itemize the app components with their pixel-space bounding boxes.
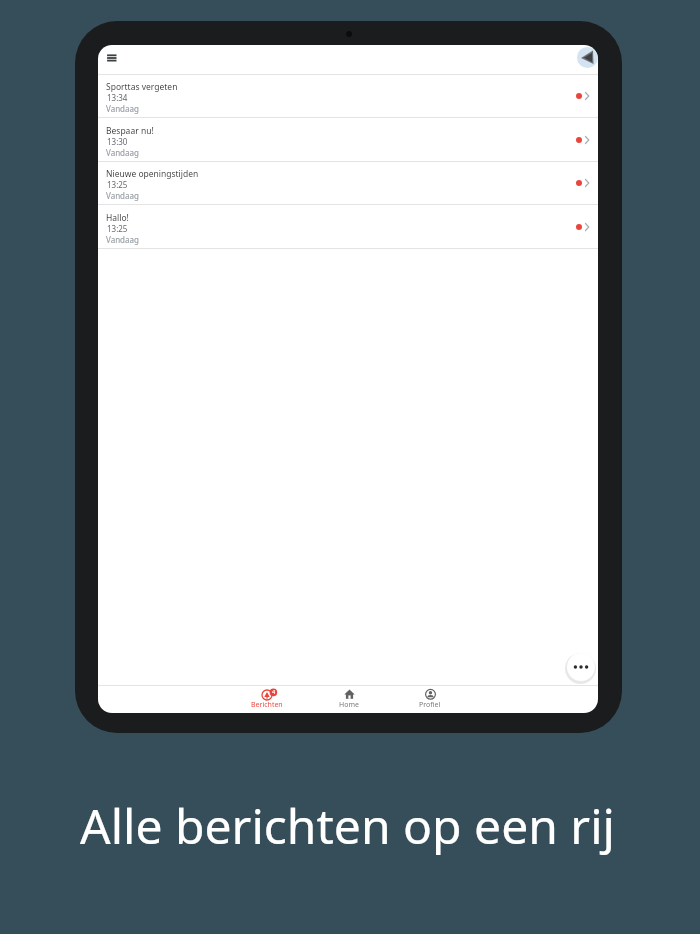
button[interactable]: Hallo! <box>98 205 598 249</box>
staticText: Vandaag <box>106 147 139 158</box>
staticText: 4 <box>272 688 276 695</box>
button[interactable] <box>102 49 122 67</box>
button[interactable]: Sporttas vergeten <box>98 74 598 118</box>
button[interactable] <box>567 653 595 681</box>
staticText: Vandaag <box>106 103 139 114</box>
button[interactable]: Bespaar nu! <box>98 118 598 162</box>
button[interactable]: 4 <box>237 686 297 712</box>
staticText: Home <box>339 700 359 710</box>
staticText: Bespaar nu! <box>106 125 154 137</box>
button[interactable]: Nieuwe openingstijden <box>98 161 598 205</box>
staticText: Berichten <box>251 700 283 710</box>
staticText: 13:34 <box>107 92 128 103</box>
staticText: Profiel <box>419 700 441 710</box>
staticText: Sporttas vergeten <box>106 81 178 93</box>
button[interactable]: Profiel <box>400 686 460 712</box>
staticText: Hallo! <box>106 212 129 224</box>
staticText: Vandaag <box>106 190 139 201</box>
staticText: 13:30 <box>107 136 128 147</box>
staticText: Alle berichten op een rij <box>80 793 615 858</box>
button[interactable]: Home <box>319 686 379 712</box>
button[interactable] <box>577 47 598 68</box>
staticText: Nieuwe openingstijden <box>106 168 199 180</box>
staticText: Vandaag <box>106 234 139 245</box>
staticText: 13:25 <box>107 223 128 234</box>
staticText: 13:25 <box>107 179 128 190</box>
